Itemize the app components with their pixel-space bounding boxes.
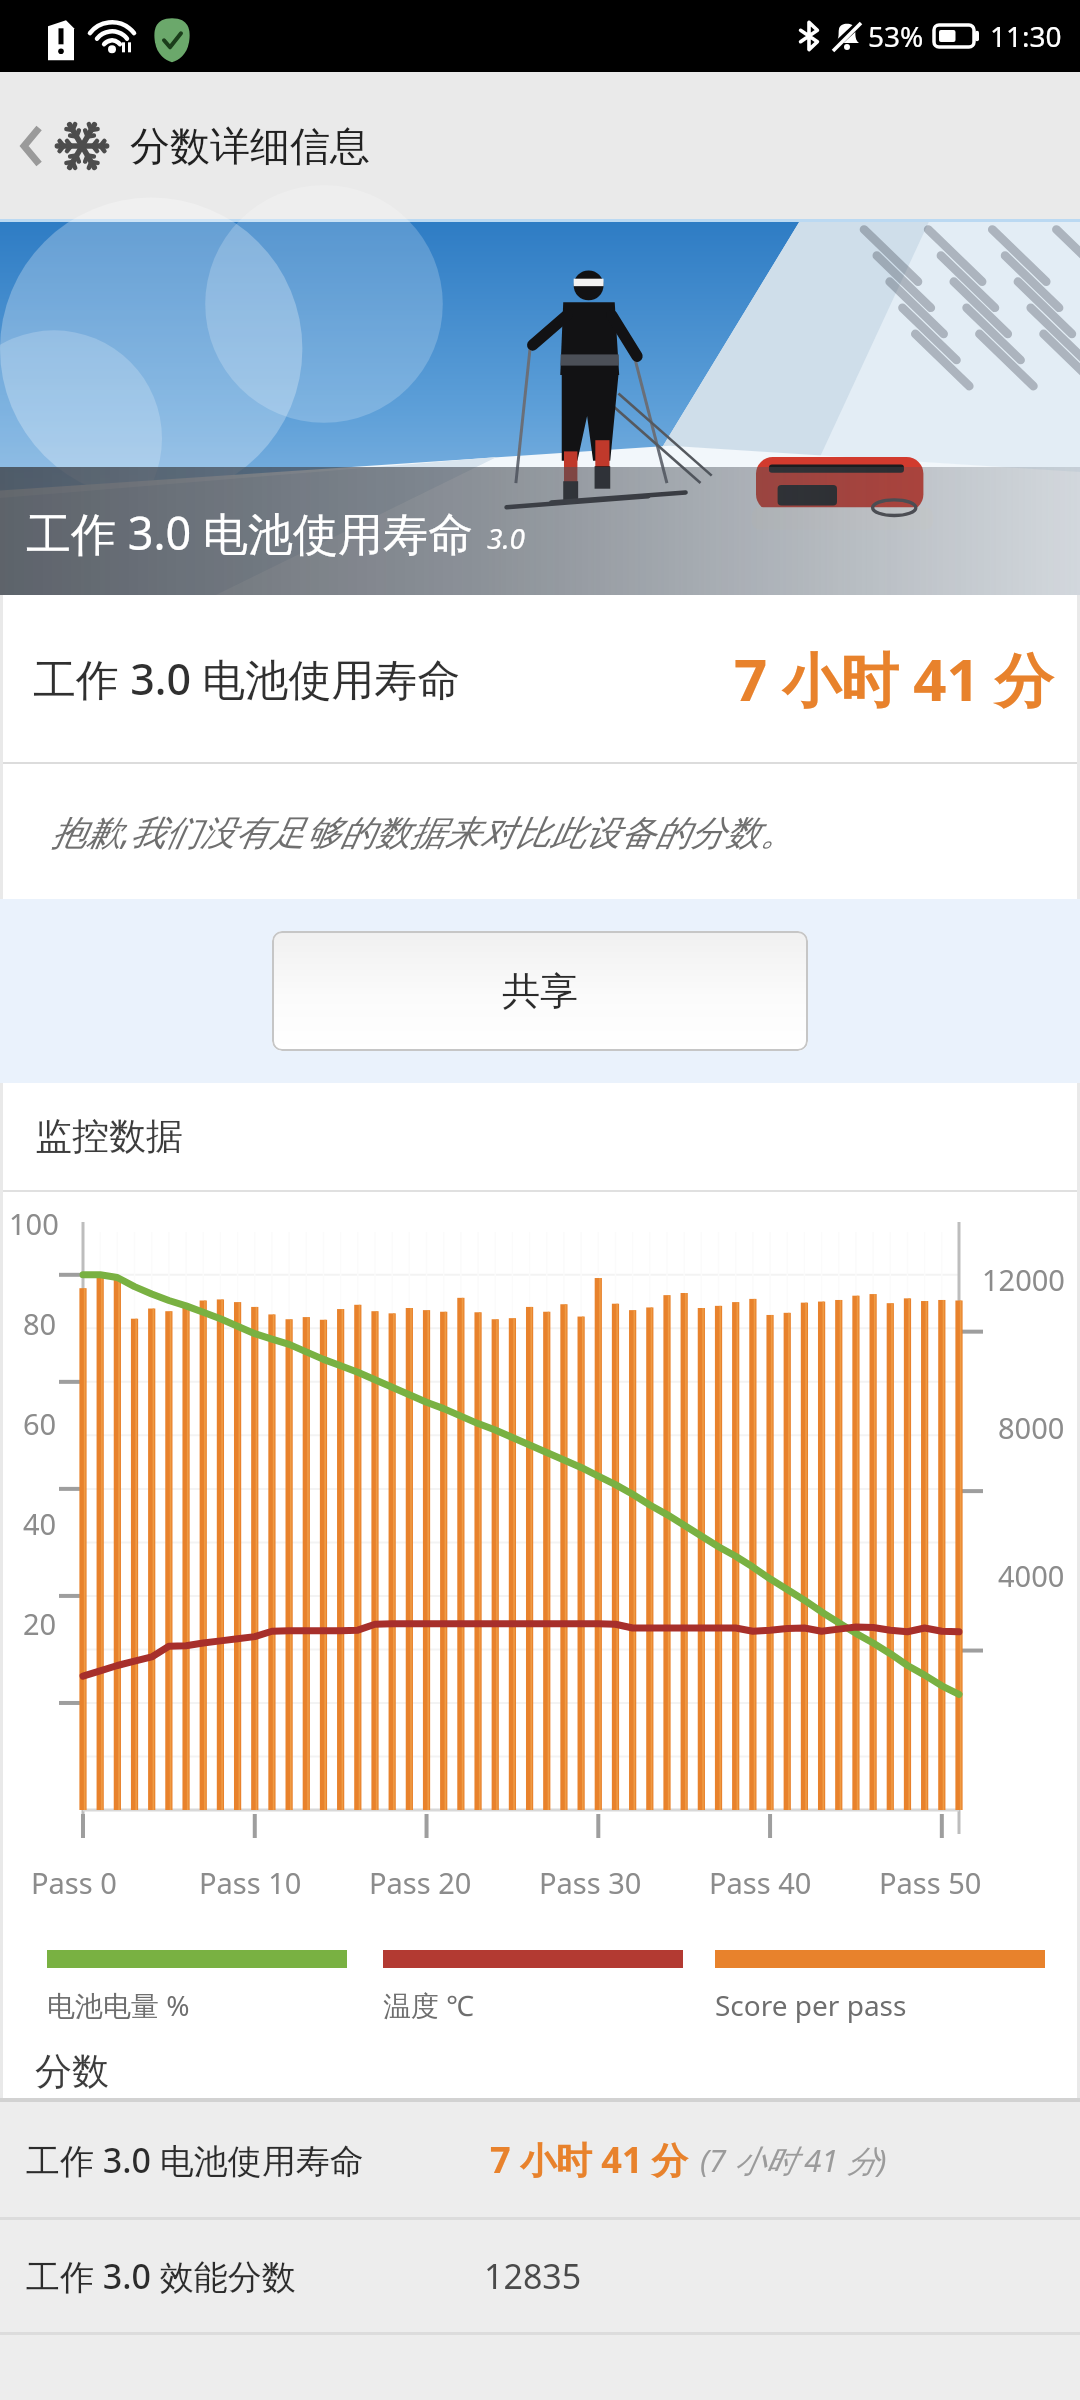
staticText: 工作 3.0 效能分数 <box>26 2253 296 2299</box>
staticText: 3.0 <box>487 519 526 557</box>
staticText: 电池电量 % <box>47 1986 190 2024</box>
staticText: Pass 0 <box>31 1863 117 1902</box>
staticText: 7 小时 41 分 <box>734 639 1053 718</box>
staticText: 100 <box>9 1204 59 1243</box>
staticText: Pass 30 <box>539 1863 642 1902</box>
staticText: 分数 <box>35 2048 109 2095</box>
staticText: 4000 <box>998 1556 1065 1595</box>
staticText: Score per pass <box>715 1986 907 2024</box>
button[interactable]: Back <box>0 97 114 195</box>
staticText: Pass 40 <box>709 1863 812 1902</box>
staticText: 共享 <box>502 967 578 1015</box>
staticText: 温度 ℃ <box>383 1986 475 2024</box>
staticText: 工作 3.0 电池使用寿命 <box>33 649 461 708</box>
staticText: 12835 <box>484 2253 582 2299</box>
staticText: 11:30 <box>990 17 1062 55</box>
staticText: Pass 10 <box>199 1863 302 1902</box>
staticText: 7 小时 41 分 <box>490 2135 688 2184</box>
staticText: 80 <box>23 1304 57 1343</box>
button[interactable]: 工作 3.0 电池使用寿命 <box>0 2102 1080 2217</box>
staticText: 12000 <box>982 1260 1065 1299</box>
staticText: Pass 50 <box>879 1863 982 1902</box>
staticText: 抱歉,我们没有足够的数据来对比此设备的分数。 <box>51 808 795 856</box>
button[interactable]: 工作 3.0 效能分数 <box>0 2220 1080 2332</box>
staticText: 工作 3.0 电池使用寿命 <box>26 502 473 563</box>
staticText: (7 小时 41 分) <box>700 2139 887 2181</box>
staticText: Pass 20 <box>369 1863 472 1902</box>
button[interactable]: 共享 <box>272 931 808 1051</box>
staticText: 分数详细信息 <box>130 121 370 171</box>
staticText: 8000 <box>998 1408 1065 1447</box>
staticText: 20 <box>23 1604 57 1643</box>
staticText: 工作 3.0 电池使用寿命 <box>26 2137 364 2183</box>
staticText: 监控数据 <box>35 1113 183 1160</box>
staticText: 53% <box>868 17 924 55</box>
staticText: 40 <box>23 1504 57 1543</box>
staticText: 60 <box>23 1404 57 1443</box>
